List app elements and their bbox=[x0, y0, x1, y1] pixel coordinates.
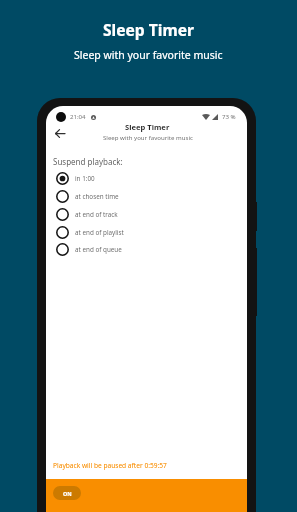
staticText: ON bbox=[63, 490, 72, 497]
staticText: at end of queue bbox=[75, 245, 122, 254]
button[interactable]: at end of track bbox=[46, 205, 247, 223]
staticText: at end of track bbox=[75, 210, 118, 219]
button[interactable]: at chosen time bbox=[46, 187, 247, 205]
staticText: in 1:00 bbox=[75, 174, 95, 183]
staticText: Sleep with your favourite music bbox=[103, 133, 193, 141]
staticText: at end of playlist bbox=[75, 228, 124, 237]
button[interactable]: Back bbox=[50, 124, 69, 143]
staticText: Playback will be paused after 0:59:57 bbox=[53, 461, 167, 470]
button[interactable]: ON bbox=[53, 486, 81, 500]
staticText: Sleep Timer bbox=[103, 19, 194, 40]
staticText: Sleep Timer bbox=[125, 122, 170, 132]
staticText: 21:04 bbox=[70, 112, 86, 120]
button[interactable]: at end of queue bbox=[46, 240, 247, 258]
staticText: 73 % bbox=[222, 112, 236, 120]
button[interactable]: at end of playlist bbox=[46, 223, 247, 241]
staticText: at chosen time bbox=[75, 192, 119, 201]
staticText: Suspend playback: bbox=[53, 156, 123, 167]
button[interactable]: in 1:00 bbox=[46, 169, 247, 187]
staticText: Sleep with your favorite music bbox=[74, 48, 223, 62]
